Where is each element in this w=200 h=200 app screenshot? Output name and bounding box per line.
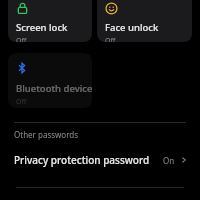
staticText: On [163, 155, 175, 166]
button[interactable]: Bluetooth device [8, 53, 92, 108]
staticText: Bluetooth device [16, 82, 92, 95]
staticText: Screen lock [16, 21, 68, 34]
staticText: Other passwords [14, 129, 79, 140]
button[interactable]: Face unlock [97, 0, 192, 42]
staticText: Off [16, 97, 27, 107]
other: Face unlock [105, 2, 118, 15]
staticText: Face unlock [105, 21, 159, 34]
staticText: Off [105, 36, 116, 42]
other: Screen lock [16, 2, 29, 15]
button[interactable]: Screen lock [8, 0, 92, 42]
staticText: Off [16, 36, 27, 42]
button[interactable]: Privacy protection password [0, 146, 200, 174]
staticText: Privacy protection password [14, 153, 150, 167]
other: Bluetooth device [16, 62, 28, 74]
